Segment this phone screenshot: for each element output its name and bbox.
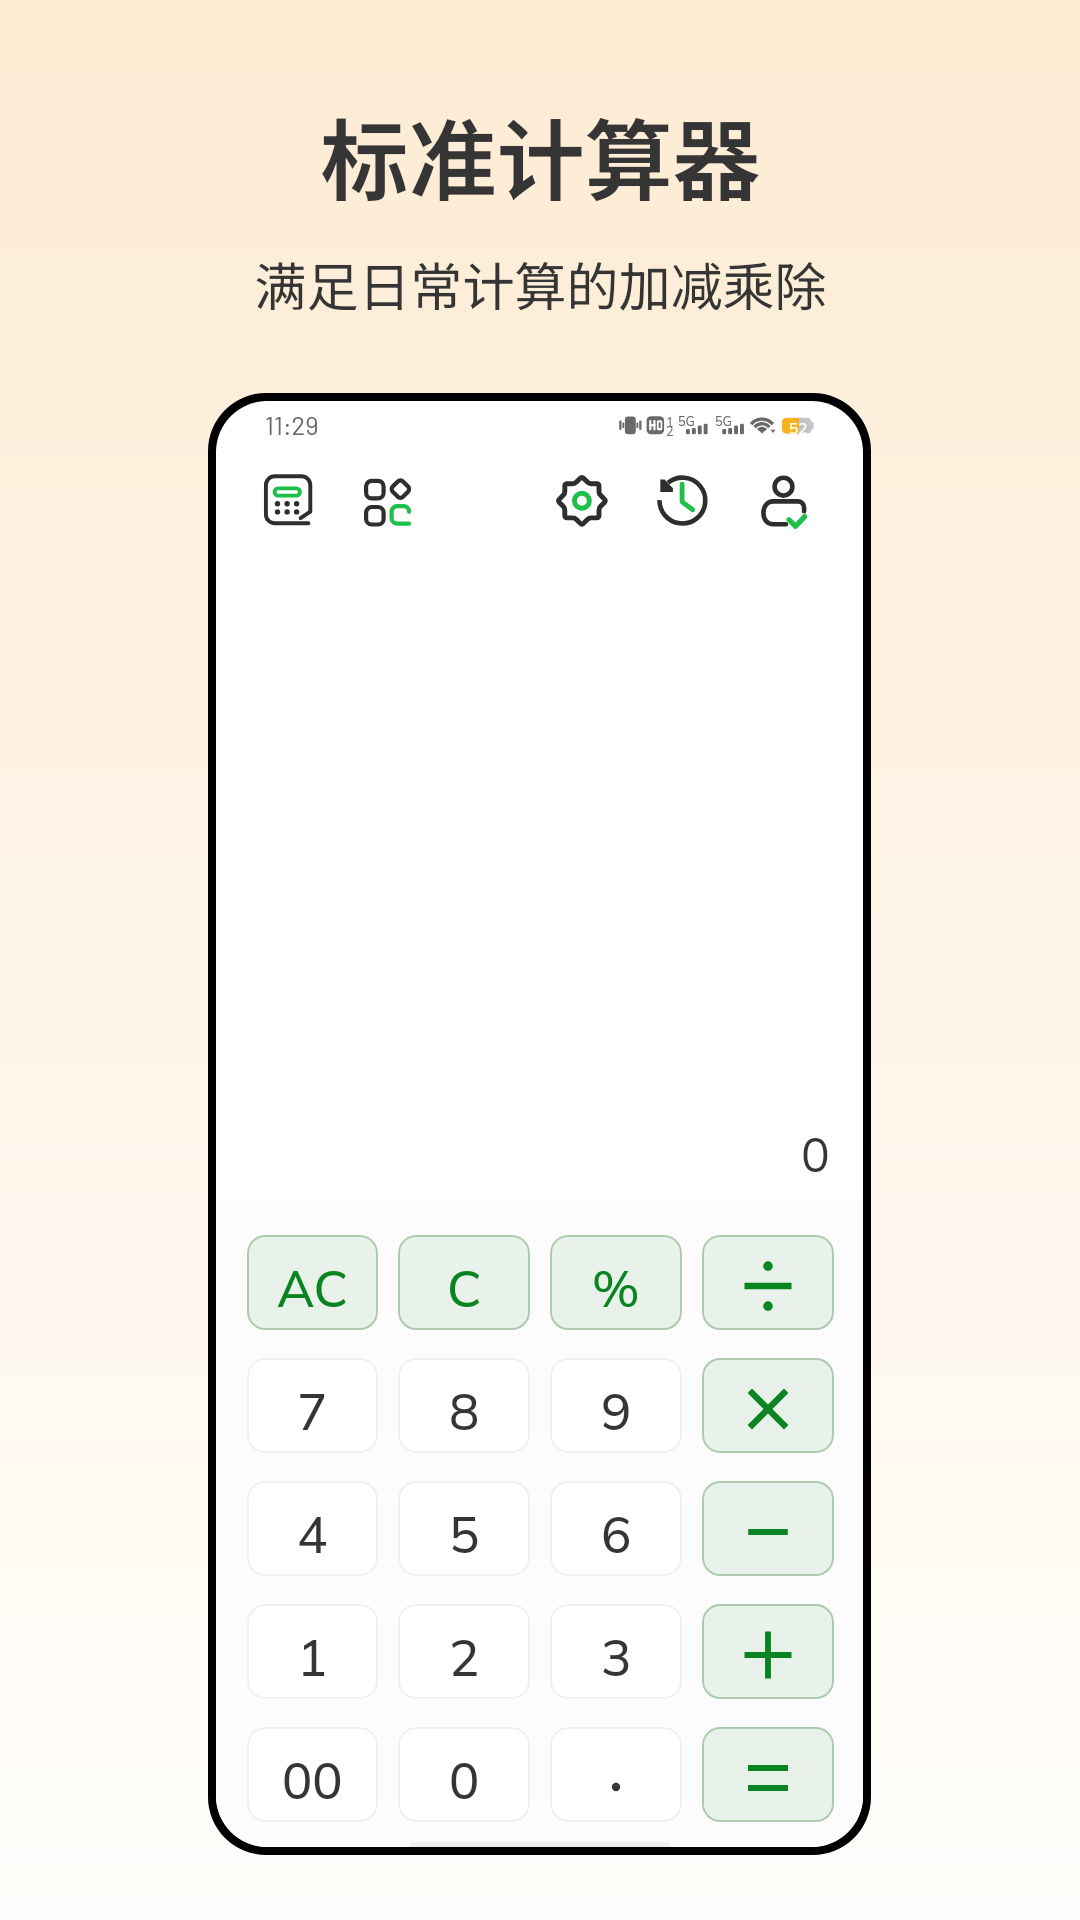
button[interactable]: Modes [364,478,412,526]
button[interactable]: 00 [247,1727,378,1822]
staticText: C [447,1256,482,1319]
button[interactable]: 2 [398,1604,530,1699]
button[interactable]: 5 [398,1481,530,1576]
staticText: 5G [678,413,695,429]
staticText: 7 [297,1379,328,1442]
staticText: 6 [601,1502,632,1565]
staticText: 00 [282,1748,343,1811]
staticText: 3 [601,1625,632,1688]
staticText: 标准计算器 [320,91,761,218]
staticText: 2 [666,423,674,439]
button[interactable]: C [398,1235,530,1330]
button[interactable]: % [550,1235,682,1330]
button[interactable]: 1 [247,1604,378,1699]
button[interactable]: Settings [555,474,609,528]
button[interactable]: Multiply [702,1358,834,1453]
staticText: 满足日常计算的加减乘除 [254,246,827,321]
staticText: 1 [297,1625,328,1688]
staticText: 11:29 [265,409,319,440]
staticText: 2 [449,1625,480,1688]
button[interactable]: Account [760,474,814,528]
button[interactable]: AC [247,1235,378,1330]
staticText: 5G [715,413,732,429]
button[interactable]: 8 [398,1358,530,1453]
button[interactable]: Equals [702,1727,834,1822]
staticText: 1 [666,414,674,430]
button[interactable]: Calculator [264,476,312,524]
staticText: % [592,1256,640,1319]
staticText: 0 [449,1748,480,1811]
button[interactable]: 6 [550,1481,682,1576]
button[interactable]: 3 [550,1604,682,1699]
staticText: 9 [601,1379,632,1442]
staticText: 8 [449,1379,480,1442]
button[interactable]: 0 [398,1727,530,1822]
staticText: 4 [297,1502,328,1565]
staticText: 0 [801,1124,830,1184]
button[interactable]: 9 [550,1358,682,1453]
button[interactable]: Subtract [702,1481,834,1576]
button[interactable]: Divide [702,1235,834,1330]
staticText: 52 [789,418,808,437]
staticText: 5 [449,1502,480,1565]
button[interactable] [550,1727,682,1822]
button[interactable]: History [656,474,710,528]
button[interactable]: 4 [247,1481,378,1576]
button[interactable]: Add [702,1604,834,1699]
staticText: AC [277,1256,349,1319]
button[interactable]: 7 [247,1358,378,1453]
